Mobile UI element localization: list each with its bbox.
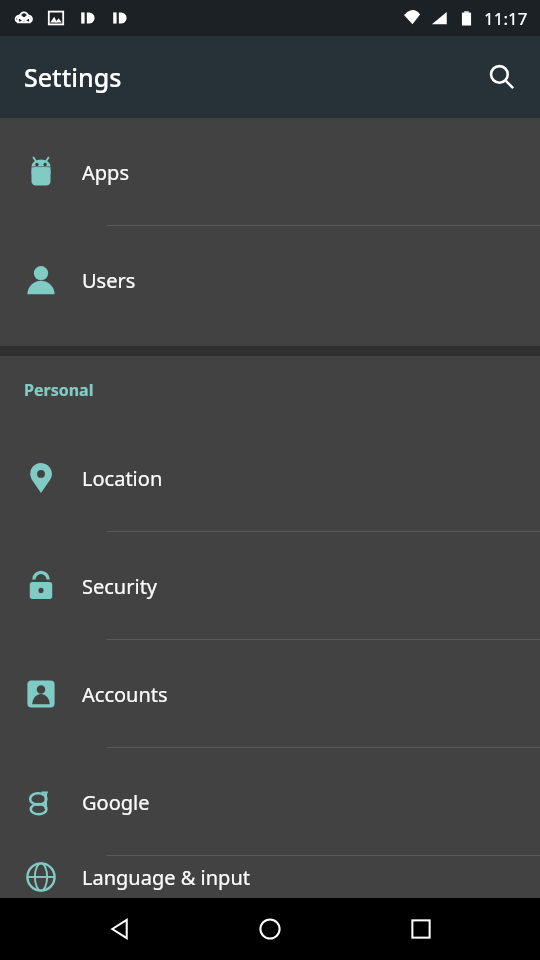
button[interactable]: Accounts xyxy=(0,640,540,748)
button[interactable]: Back xyxy=(89,898,151,960)
staticText: Users xyxy=(82,267,136,294)
button[interactable]: Search xyxy=(478,53,526,101)
button[interactable]: Apps xyxy=(0,118,540,226)
staticText: Accounts xyxy=(82,681,168,708)
staticText: Language & input xyxy=(82,864,250,891)
button[interactable]: Location xyxy=(0,424,540,532)
staticText: Google xyxy=(82,789,150,816)
staticText: Personal xyxy=(24,379,94,401)
staticText: Settings xyxy=(24,60,122,94)
button[interactable]: Language & input xyxy=(0,856,540,898)
button[interactable]: Security xyxy=(0,532,540,640)
button[interactable]: Users xyxy=(0,226,540,334)
button[interactable]: Home xyxy=(239,898,301,960)
staticText: 11:17 xyxy=(484,7,528,30)
staticText: Apps xyxy=(82,159,129,186)
button[interactable]: Recent apps xyxy=(390,898,452,960)
button[interactable]: Google xyxy=(0,748,540,856)
staticText: Location xyxy=(82,465,163,492)
staticText: Security xyxy=(82,573,158,600)
